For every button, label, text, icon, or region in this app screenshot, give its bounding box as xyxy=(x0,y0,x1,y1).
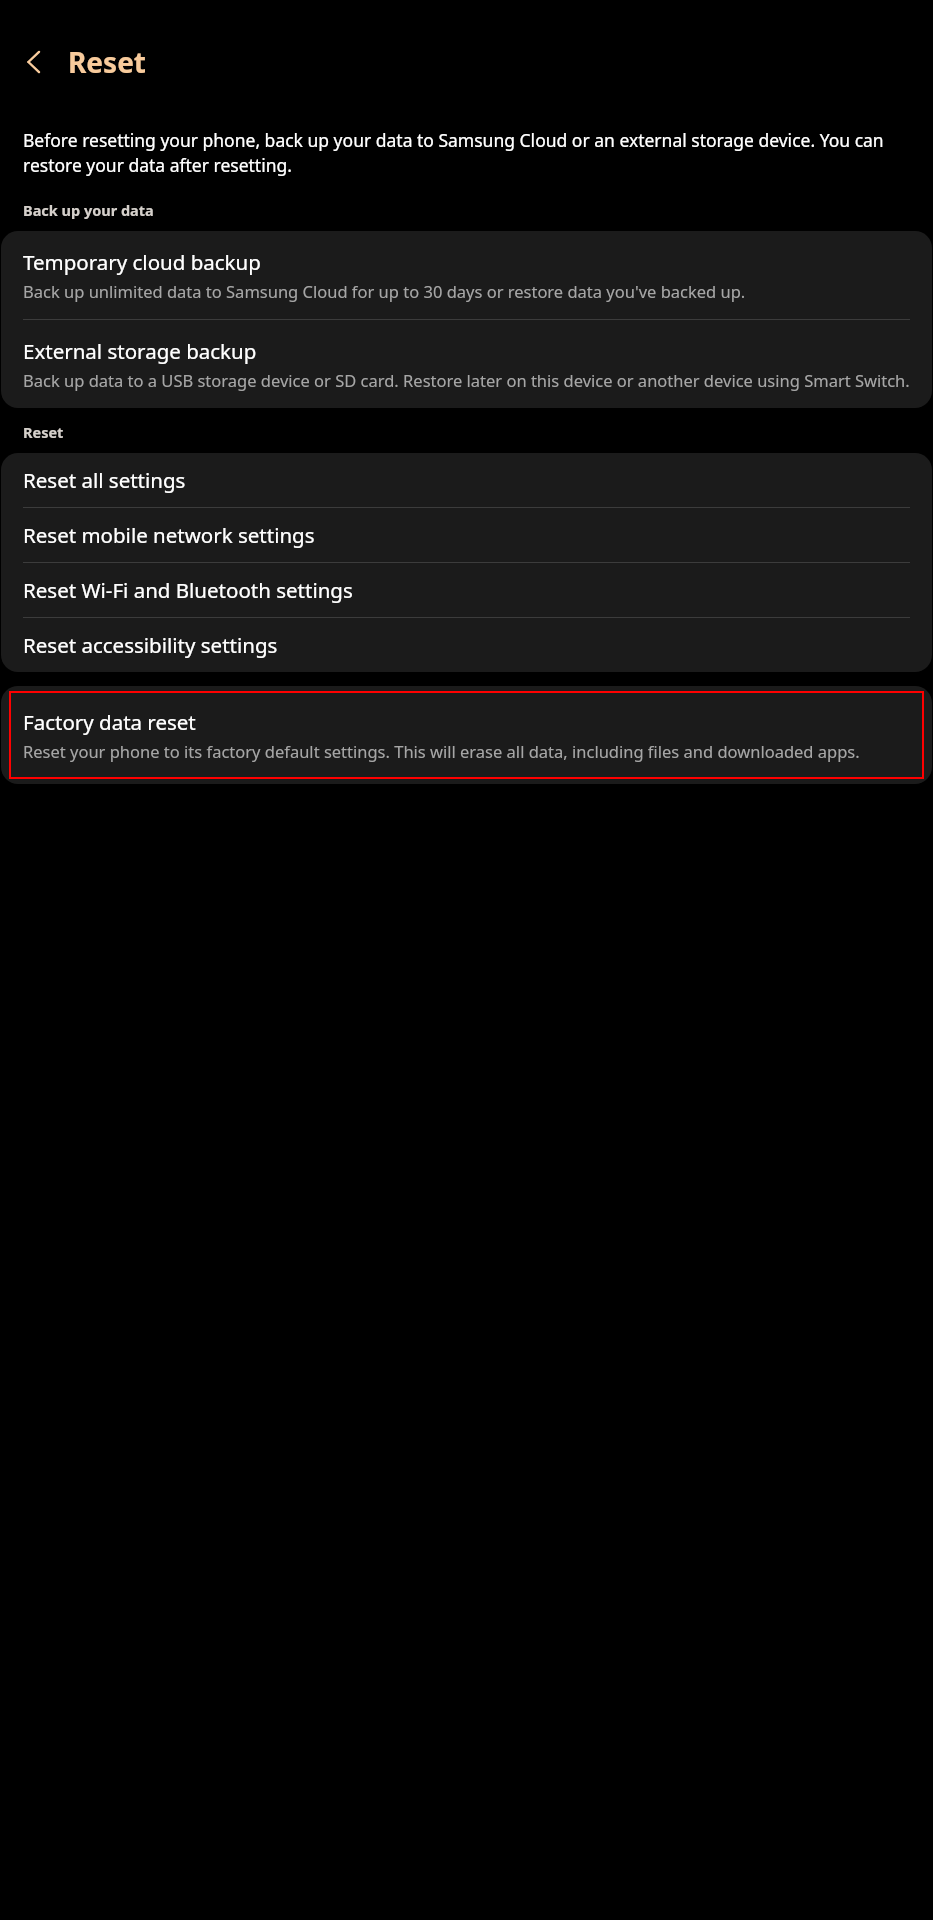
staticText: Back up unlimited data to Samsung Cloud … xyxy=(23,280,746,302)
staticText: Reset Wi-Fi and Bluetooth settings xyxy=(23,576,353,604)
staticText: Reset accessibility settings xyxy=(23,631,278,659)
button[interactable]: Reset mobile network settings xyxy=(1,508,932,562)
staticText: External storage backup xyxy=(23,337,257,365)
button[interactable]: Factory data reset xyxy=(9,691,924,779)
staticText: Temporary cloud backup xyxy=(23,248,261,276)
button[interactable]: Temporary cloud backup xyxy=(1,231,932,319)
button[interactable]: Back xyxy=(8,36,60,88)
staticText: Back up your data xyxy=(23,200,154,220)
button[interactable]: Reset Wi-Fi and Bluetooth settings xyxy=(1,563,932,617)
staticText: Reset all settings xyxy=(23,466,186,494)
staticText: Factory data reset xyxy=(23,708,196,736)
staticText: Reset mobile network settings xyxy=(23,521,315,549)
button[interactable]: Reset all settings xyxy=(1,453,932,507)
button[interactable]: Reset accessibility settings xyxy=(1,618,932,672)
staticText: Reset your phone to its factory default … xyxy=(23,740,860,762)
staticText: Reset xyxy=(68,43,147,81)
staticText: Before resetting your phone, back up you… xyxy=(23,128,910,178)
button[interactable]: External storage backup xyxy=(1,320,932,408)
staticText: Back up data to a USB storage device or … xyxy=(23,369,910,391)
staticText: Reset xyxy=(23,422,64,442)
